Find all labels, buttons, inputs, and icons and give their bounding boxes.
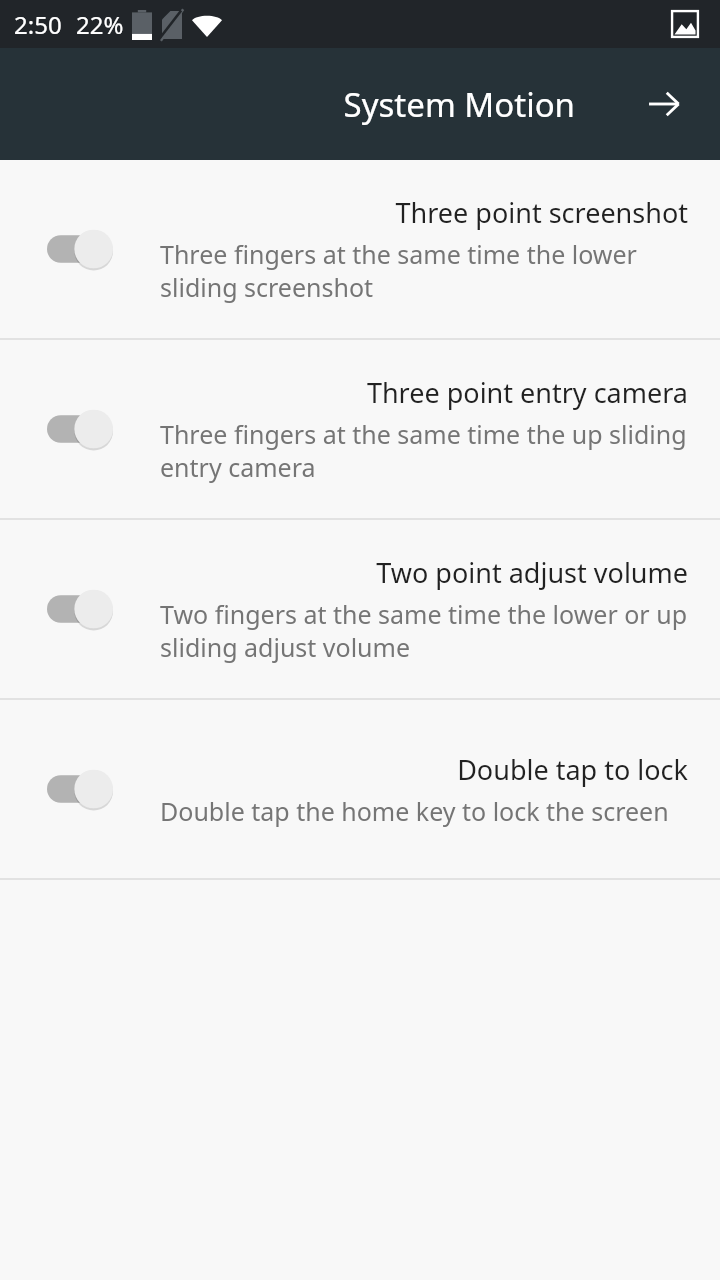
button[interactable]: Toggle — [47, 407, 123, 451]
staticText: Double tap to lock — [160, 751, 688, 788]
staticText: Three point screenshot — [160, 194, 688, 231]
staticText: 2:50 — [14, 8, 62, 41]
staticText: Two fingers at the same time the lower o… — [160, 597, 688, 664]
staticText: System Motion — [343, 82, 575, 127]
staticText: Three point entry camera — [160, 374, 688, 411]
staticText: 22% — [76, 8, 124, 41]
button[interactable]: Toggle — [0, 340, 720, 518]
button[interactable]: Forward — [640, 80, 688, 128]
button[interactable]: Toggle — [47, 227, 123, 271]
other: Screenshot — [668, 7, 702, 41]
button[interactable]: Toggle — [0, 520, 720, 698]
staticText: Three fingers at the same time the up sl… — [160, 417, 688, 484]
button[interactable]: Toggle — [0, 160, 720, 338]
button[interactable]: Toggle — [47, 767, 123, 811]
button[interactable]: Toggle — [47, 587, 123, 631]
staticText: Three fingers at the same time the lower… — [160, 237, 688, 304]
button[interactable]: Toggle — [0, 700, 720, 878]
staticText: Two point adjust volume — [160, 554, 688, 591]
staticText: Double tap the home key to lock the scre… — [160, 794, 688, 828]
